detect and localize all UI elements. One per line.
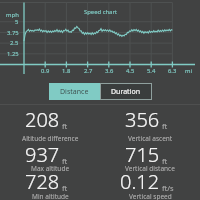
- staticText: 3.75: [7, 29, 19, 37]
- staticText: 715: [125, 141, 160, 168]
- staticText: 208: [25, 106, 60, 133]
- staticText: ft: [60, 121, 68, 131]
- staticText: Max altitude: [31, 164, 70, 173]
- staticText: 1.8: [62, 67, 71, 75]
- staticText: Altitude difference: [22, 134, 79, 143]
- staticText: ft: [60, 156, 68, 166]
- button[interactable]: Duration: [100, 83, 152, 100]
- staticText: 1.25: [7, 50, 19, 58]
- staticText: Distance: [60, 87, 89, 97]
- staticText: 4.5: [126, 67, 135, 75]
- staticText: Min altitude: [32, 192, 69, 200]
- staticText: ft: [160, 156, 168, 166]
- staticText: Vertical distance: [125, 164, 175, 173]
- staticText: 0.12: [120, 168, 160, 195]
- staticText: 5: [15, 18, 19, 26]
- staticText: Vertical speed: [129, 192, 172, 200]
- staticText: 2.5: [10, 39, 19, 47]
- staticText: 3.6: [105, 67, 114, 75]
- staticText: mph: [6, 11, 19, 19]
- staticText: ft: [60, 183, 68, 193]
- button[interactable]: Distance: [49, 83, 100, 100]
- staticText: ft/s: [160, 183, 174, 193]
- staticText: 356: [125, 106, 160, 133]
- staticText: Vertical ascent: [128, 134, 173, 143]
- staticText: 937: [25, 141, 60, 168]
- staticText: ft: [160, 121, 168, 131]
- staticText: 728: [25, 168, 60, 195]
- staticText: 0.9: [41, 67, 50, 75]
- staticText: 5.4: [147, 67, 156, 75]
- staticText: Speed chart: [84, 8, 117, 16]
- staticText: 2.7: [84, 67, 93, 75]
- staticText: 6.3: [168, 67, 177, 75]
- staticText: Duration: [111, 87, 141, 97]
- staticText: mi: [185, 67, 193, 75]
